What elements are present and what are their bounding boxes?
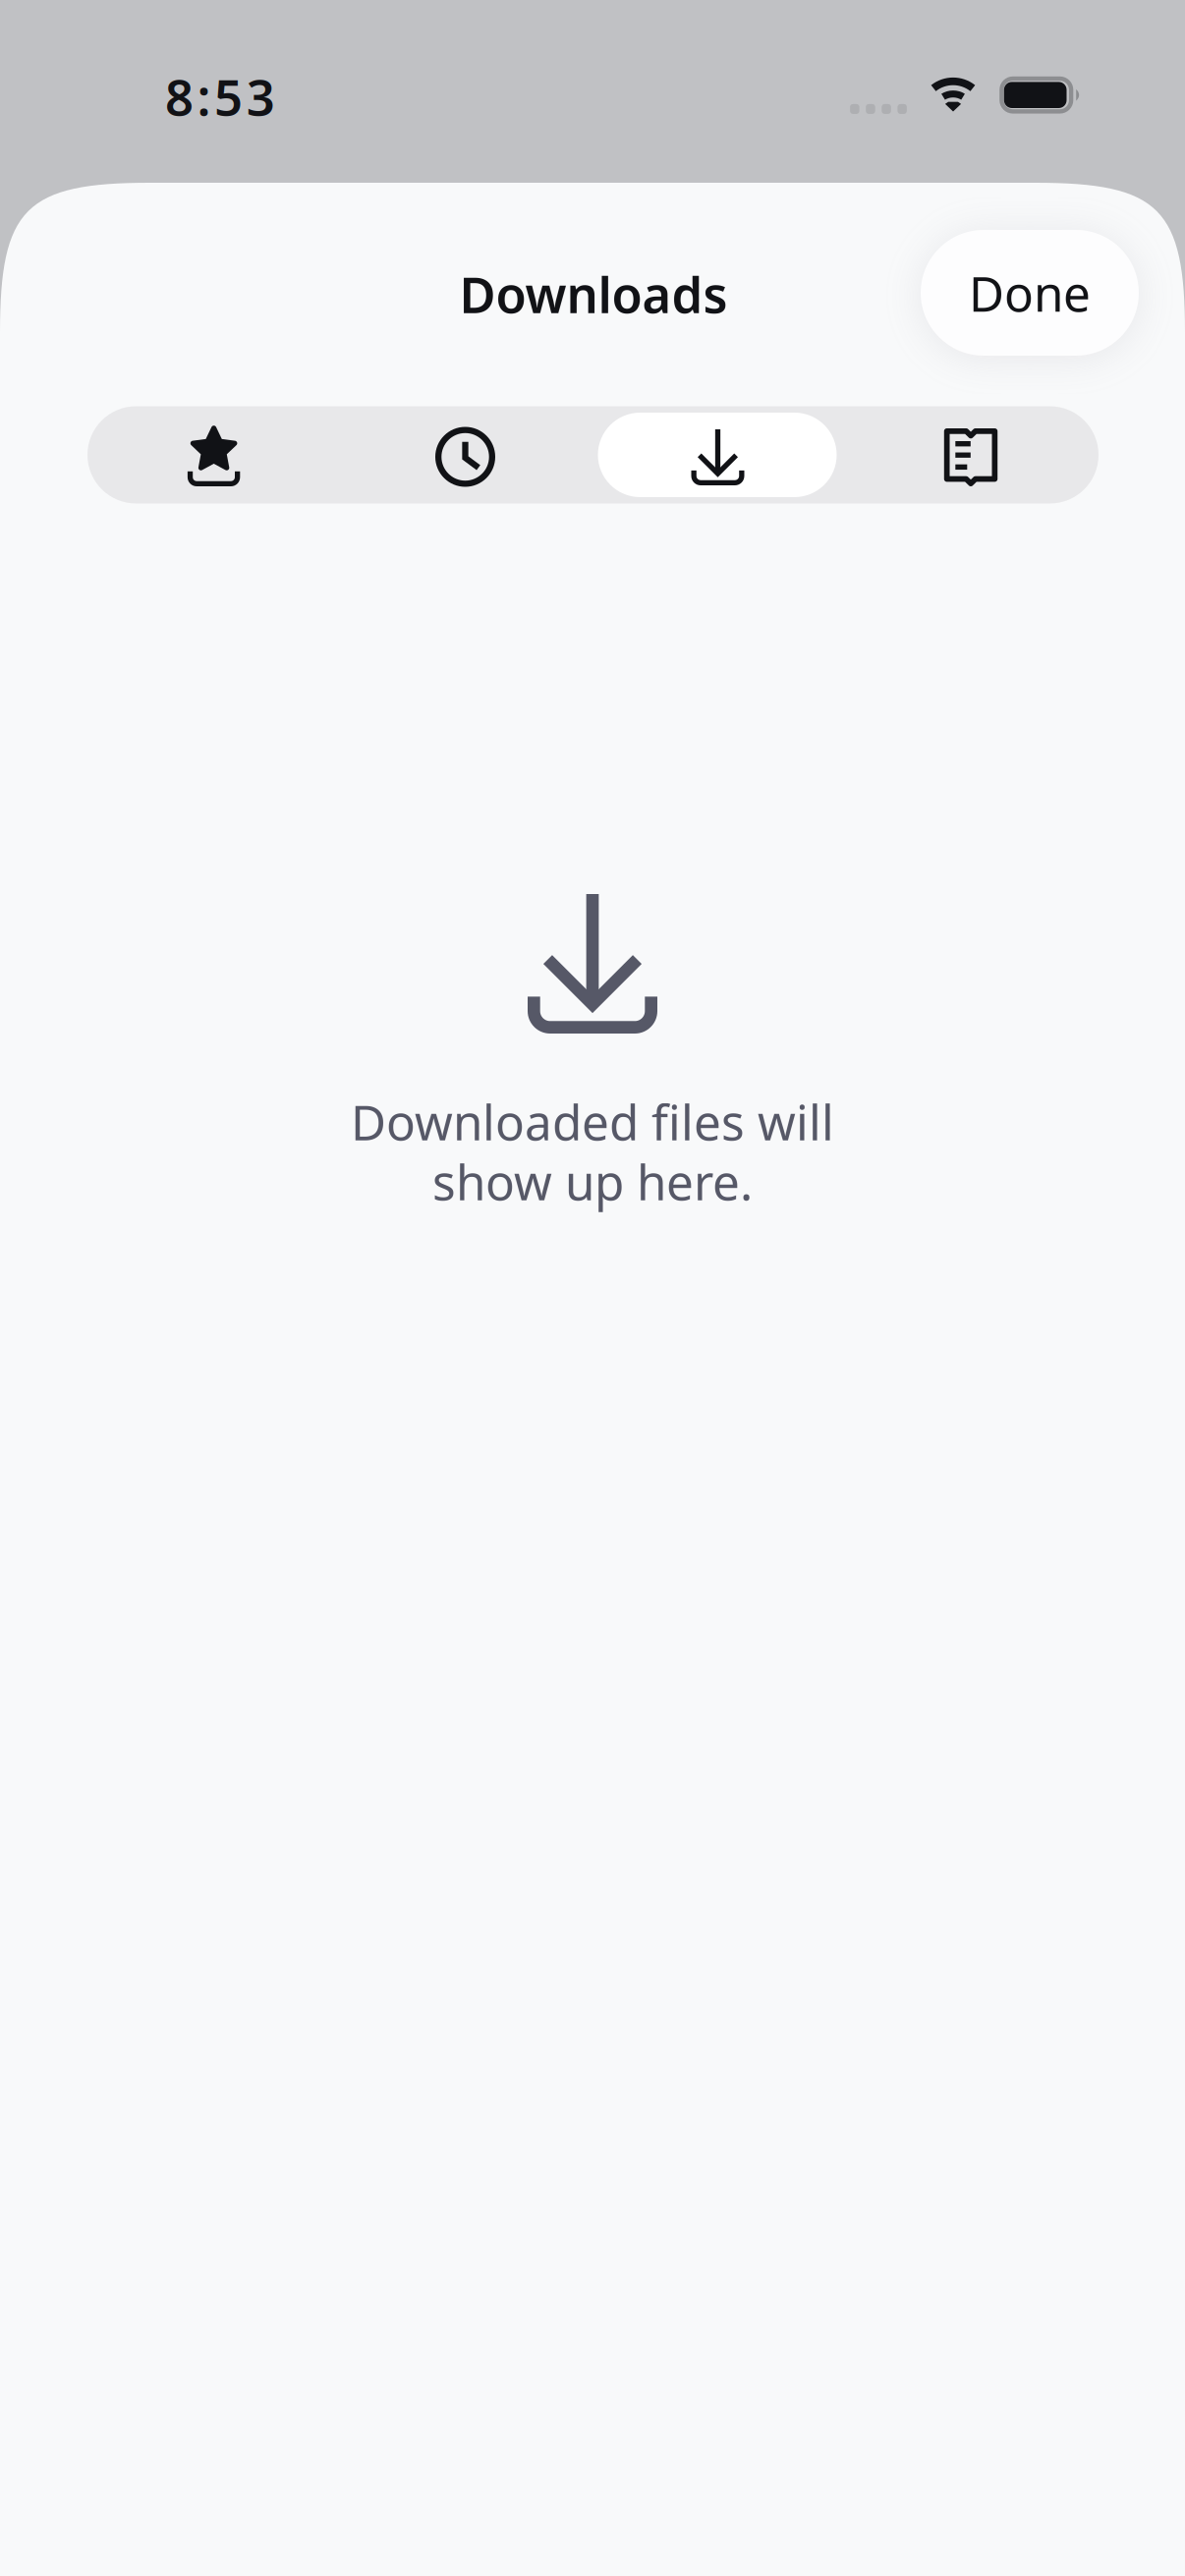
button[interactable]: Downloads [592,409,844,506]
staticText: Done [969,261,1091,325]
button[interactable]: Done [921,230,1139,356]
staticText: 8:53 [165,63,275,129]
staticText: show up here. [432,1149,753,1214]
button[interactable]: Reading List [845,408,1097,505]
button[interactable]: Bookmarks [88,407,340,504]
staticText: Downloads [459,261,728,327]
staticText: Downloaded files will [351,1089,834,1154]
button[interactable]: History [339,408,592,505]
